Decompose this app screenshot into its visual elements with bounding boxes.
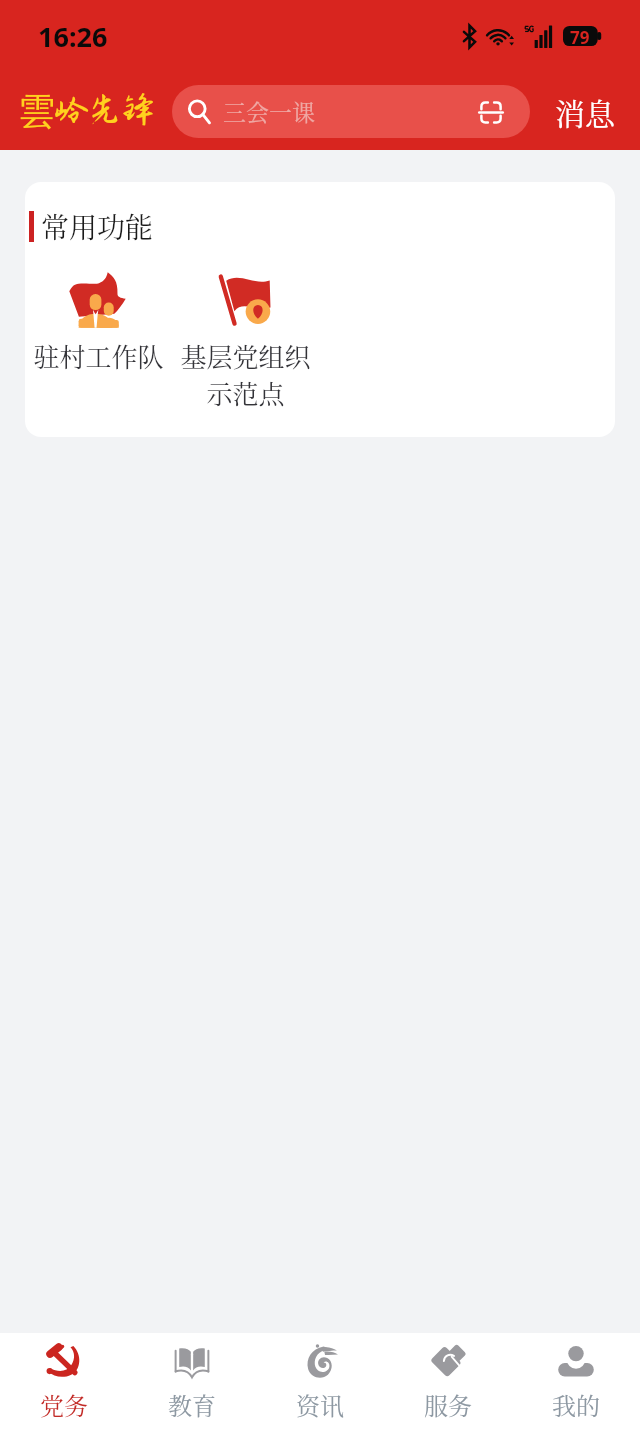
staticText: 教育 — [168, 1387, 216, 1421]
button[interactable]: 教育 — [128, 1333, 256, 1430]
staticText: 雲岭先锋 — [18, 88, 155, 135]
staticText: 党务 — [40, 1387, 88, 1421]
button[interactable]: 我的 — [512, 1333, 640, 1430]
button[interactable]: Scan QR code — [477, 98, 505, 126]
button[interactable]: 服务 — [384, 1333, 512, 1430]
button[interactable]: 消息 — [530, 72, 640, 150]
staticText: 三会一课 — [223, 95, 315, 128]
staticText: 资讯 — [296, 1387, 344, 1421]
button[interactable]: 三会一课 — [172, 85, 530, 138]
staticText: 常用功能 — [41, 206, 154, 246]
staticText: 我的 — [552, 1387, 600, 1421]
button[interactable]: 驻村工作队 — [25, 272, 172, 374]
button[interactable]: 基层党组织示范点 — [172, 272, 319, 412]
button[interactable]: 党务 — [0, 1333, 128, 1430]
staticText: 消息 — [555, 90, 615, 133]
staticText: 79 — [570, 26, 590, 46]
button[interactable]: 雲岭先锋 — [0, 72, 172, 150]
staticText: 16:26 — [38, 18, 108, 55]
staticText: 基层党组织示范点 — [174, 337, 317, 412]
staticText: 驻村工作队 — [33, 337, 164, 374]
button[interactable]: 资讯 — [256, 1333, 384, 1430]
staticText: 服务 — [424, 1387, 472, 1421]
